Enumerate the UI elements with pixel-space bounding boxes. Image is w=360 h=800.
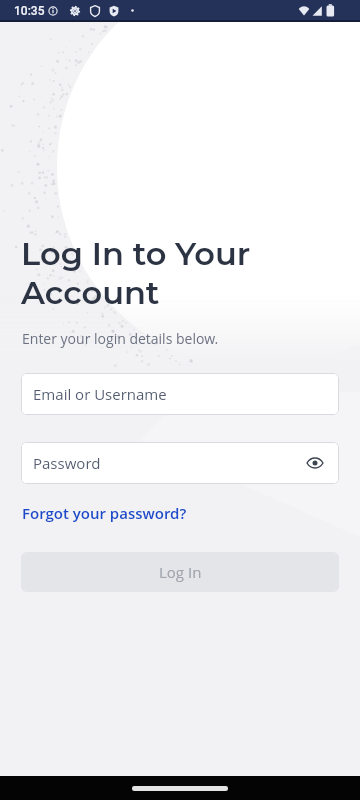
staticText: Enter your login details below. xyxy=(22,329,219,348)
button[interactable]: Password xyxy=(21,442,339,484)
staticText: 10:35 xyxy=(14,4,45,18)
staticText: Password xyxy=(33,453,101,473)
staticText: Log In to Your Account xyxy=(21,234,251,312)
button[interactable]: Forgot your password? xyxy=(22,503,187,523)
button[interactable]: Email or Username xyxy=(21,373,339,415)
staticText: Log In xyxy=(159,562,202,582)
staticText: Email or Username xyxy=(33,384,167,404)
button[interactable]: Log In xyxy=(21,552,339,592)
